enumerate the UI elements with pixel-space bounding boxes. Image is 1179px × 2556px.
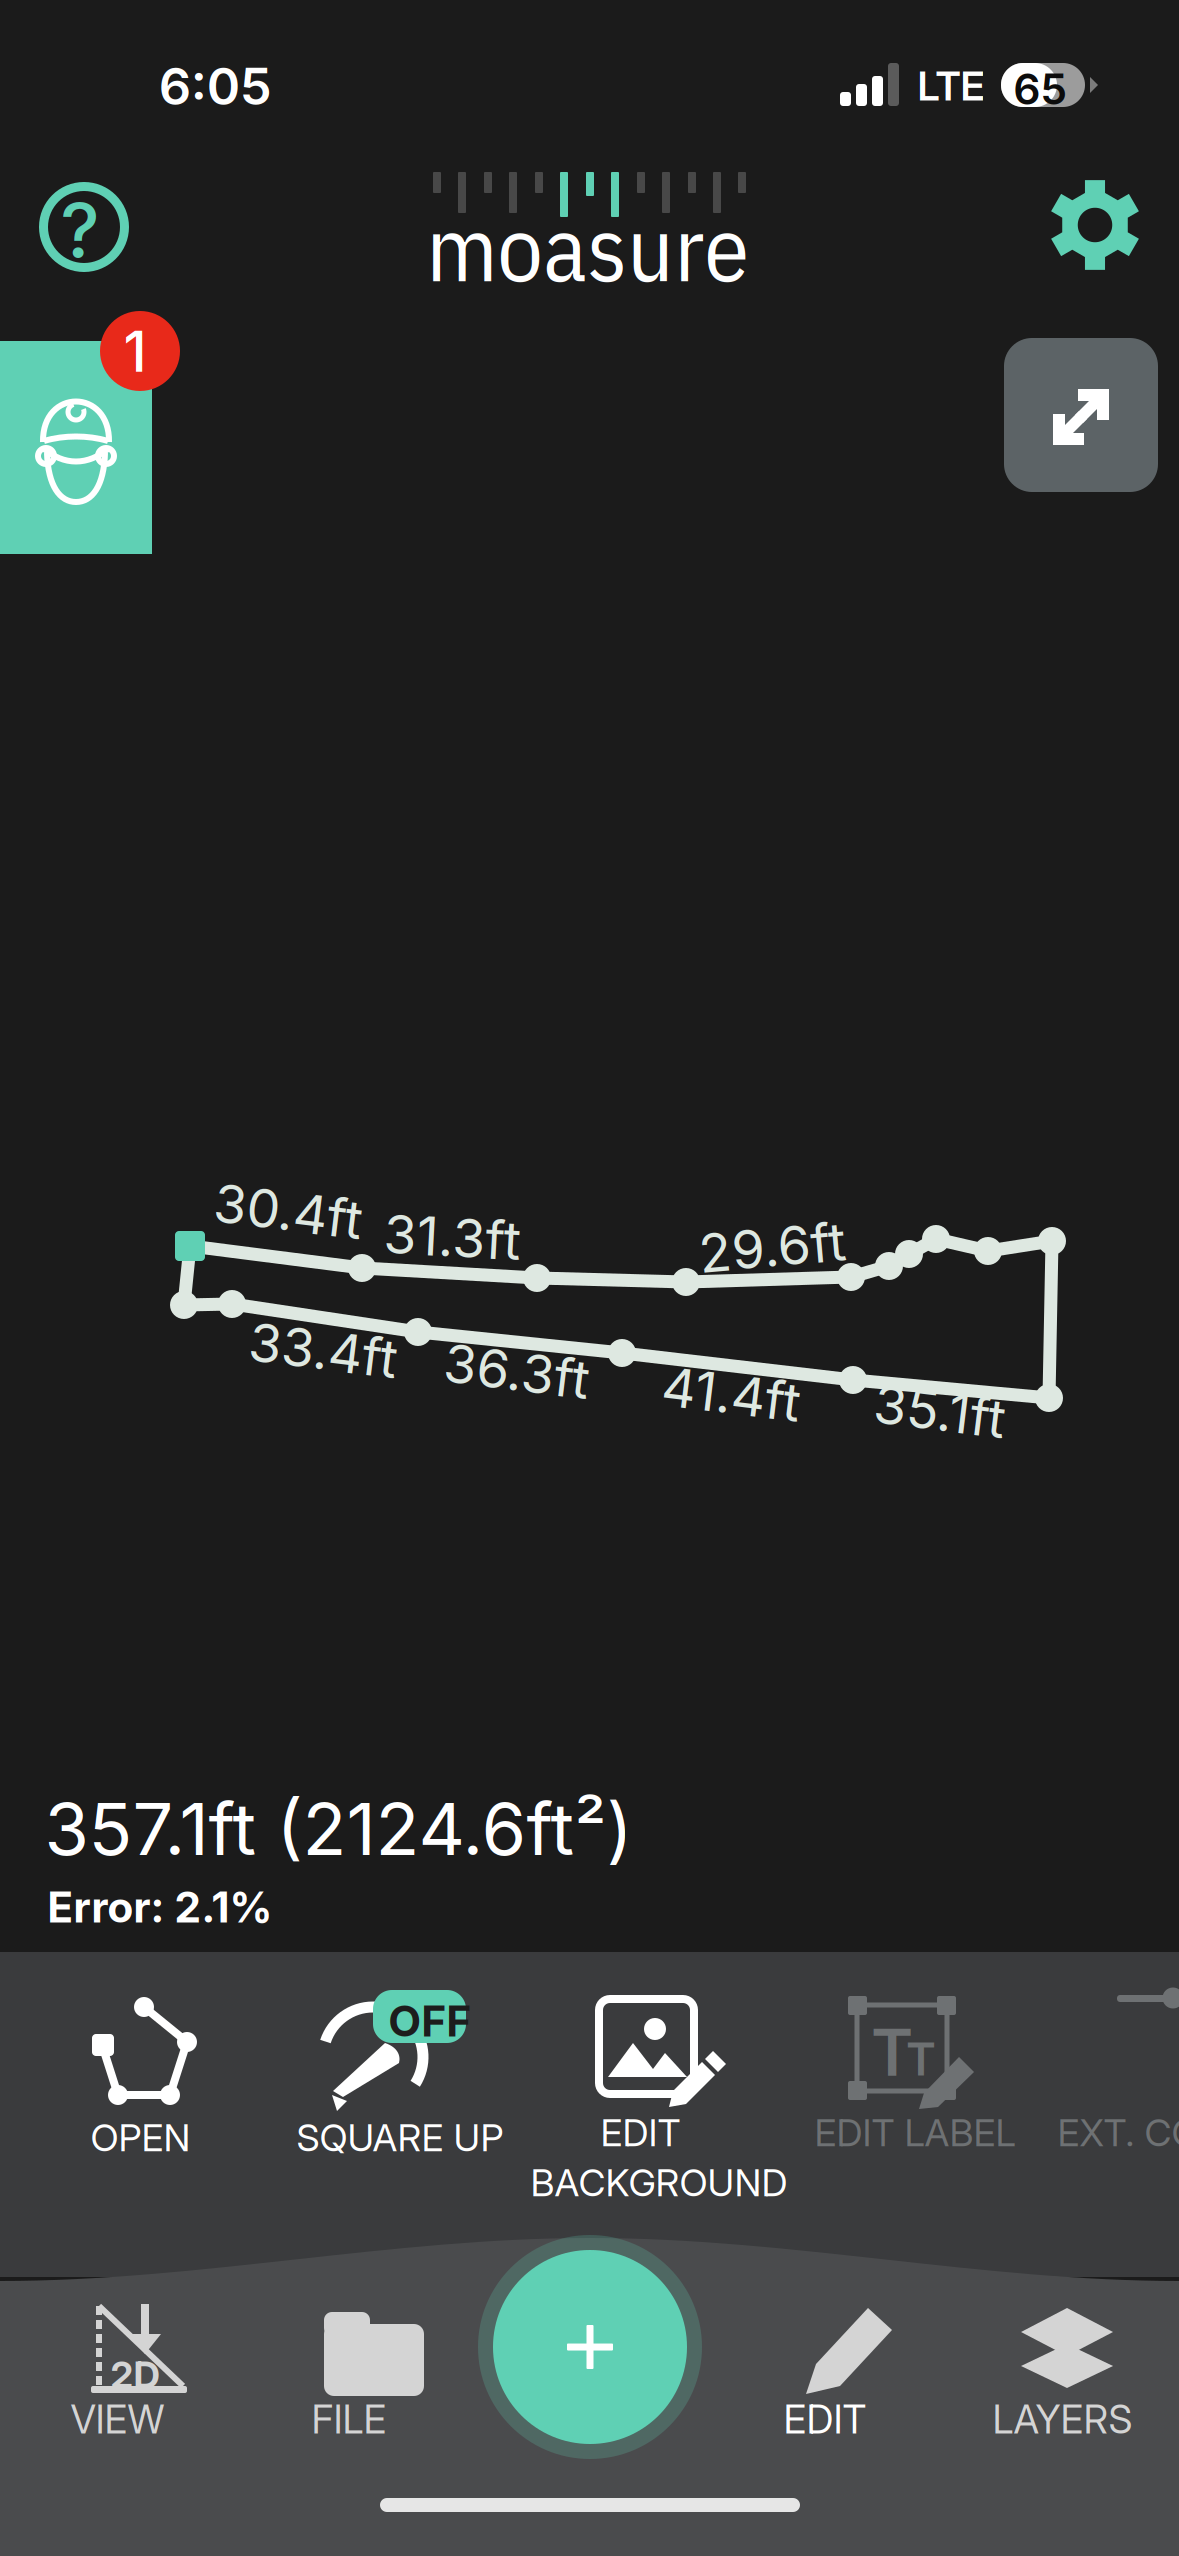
staticText: EDIT <box>783 2396 866 2443</box>
staticText: EXT. CO <box>1058 2110 1179 2155</box>
staticText: LTE <box>917 62 984 110</box>
staticText: Error: 2.1% <box>47 1881 272 1933</box>
staticText: FILE <box>311 2396 386 2443</box>
button[interactable]: FILE <box>314 2302 434 2442</box>
staticText: LAYERS <box>992 2396 1132 2443</box>
staticText: OPEN <box>91 2115 191 2160</box>
button[interactable]: Profile <box>0 341 152 554</box>
button[interactable]: Expand <box>1004 338 1158 492</box>
staticText: 357.1ft (2124.6ft²) <box>44 1785 632 1872</box>
staticText: 30.4ft <box>214 1179 363 1243</box>
staticText: OFF <box>388 1995 471 2047</box>
button[interactable]: Help <box>39 182 129 272</box>
staticText: T <box>871 2014 913 2091</box>
button[interactable]: Notifications <box>100 311 180 391</box>
button[interactable]: OPEN <box>93 2000 197 2152</box>
button[interactable]: LAYERS <box>995 2302 1138 2442</box>
staticText: SQUARE UP <box>297 2115 504 2160</box>
staticText: ? <box>60 185 99 275</box>
staticText: BACKGROUND <box>531 2160 788 2205</box>
staticText: EDIT LABEL <box>815 2110 1016 2155</box>
staticText: 41.4ft <box>662 1362 801 1426</box>
button[interactable]: Add measurement <box>478 2235 702 2459</box>
staticText: EDIT <box>601 2110 681 2155</box>
staticText: 33.4ft <box>249 1318 398 1382</box>
button[interactable]: Settings <box>1049 179 1141 271</box>
button[interactable]: 2D <box>73 2302 209 2442</box>
staticText: 31.3ft <box>384 1205 521 1269</box>
staticText: 65 <box>1013 63 1067 115</box>
button[interactable]: OFF <box>299 1985 503 2152</box>
button[interactable]: EDIT <box>786 2302 916 2442</box>
staticText: 6:05 <box>159 55 272 117</box>
staticText: T <box>906 2032 936 2087</box>
staticText: 29.6ft <box>699 1215 846 1279</box>
staticText: 36.3ft <box>444 1339 590 1403</box>
staticText: VIEW <box>70 2396 164 2443</box>
button[interactable]: EDIT <box>533 1995 781 2200</box>
staticText: 2D <box>111 2352 160 2397</box>
staticText: 35.1ft <box>874 1379 1006 1443</box>
button[interactable]: T <box>817 1995 1015 2147</box>
staticText: moasure <box>426 188 749 306</box>
staticText: 1 <box>123 317 146 385</box>
